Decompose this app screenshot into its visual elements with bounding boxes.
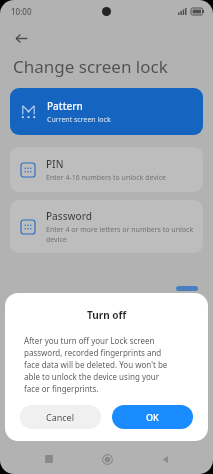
staticText: Current screen lock (47, 115, 111, 125)
staticText: face data will be deleted. You won't be (24, 359, 168, 370)
staticText: device (46, 235, 67, 245)
button[interactable]: Back (136, 445, 194, 473)
button[interactable]: PIN (10, 147, 203, 192)
staticText: face or fingerprints. (24, 383, 99, 394)
staticText: 10:00 (11, 6, 32, 17)
staticText: Pattern (47, 99, 83, 113)
staticText: Cancel (46, 411, 75, 423)
button[interactable]: Recents (20, 445, 78, 473)
button[interactable]: Pattern (10, 88, 203, 135)
button[interactable]: Back (11, 28, 31, 48)
staticText: password, recorded fingerprints and (24, 347, 162, 358)
staticText: Password (46, 209, 92, 223)
staticText: able to unlock the device using your (24, 371, 160, 382)
staticText: PIN (46, 157, 64, 171)
button[interactable]: Password (10, 200, 203, 253)
button[interactable]: Cancel (20, 405, 101, 429)
staticText: Change screen lock (13, 55, 168, 78)
staticText: OK (146, 411, 159, 423)
staticText: After you turn off your Lock screen (24, 335, 155, 346)
button[interactable]: OK (112, 405, 193, 429)
staticText: Enter 4-16 numbers to unlock device (46, 173, 166, 183)
staticText: Enter 4 or more letters or numbers to un… (46, 225, 194, 235)
button[interactable]: Home (78, 445, 136, 473)
staticText: Turn off (87, 308, 127, 322)
